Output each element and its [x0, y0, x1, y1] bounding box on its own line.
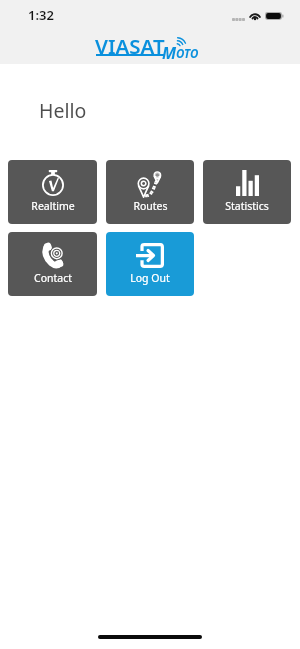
staticText: M: [162, 42, 177, 64]
button[interactable]: Log Out: [106, 232, 194, 296]
staticText: Log Out: [130, 271, 170, 285]
staticText: Contact: [34, 271, 72, 285]
staticText: Statistics: [225, 199, 269, 213]
staticText: Hello: [39, 97, 87, 124]
staticText: Realtime: [31, 199, 75, 213]
staticText: Routes: [133, 199, 168, 213]
button[interactable]: Contact: [8, 232, 97, 296]
staticText: OTO: [176, 46, 199, 62]
button[interactable]: Statistics: [203, 160, 291, 224]
button[interactable]: Realtime: [8, 160, 97, 224]
button[interactable]: Routes: [106, 160, 194, 224]
staticText: 1:32: [28, 6, 54, 24]
staticText: VIASAT: [95, 32, 165, 60]
